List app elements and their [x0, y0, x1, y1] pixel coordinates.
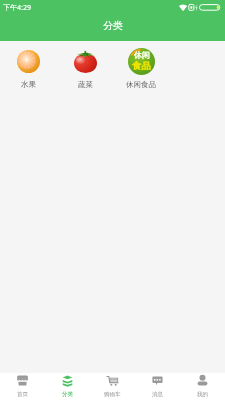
button[interactable]: 消息	[135, 373, 180, 400]
staticText: 食品	[132, 60, 151, 72]
staticText: 首页	[17, 391, 28, 398]
staticText: 分类	[103, 19, 123, 32]
staticText: 蔬菜	[78, 80, 93, 89]
button[interactable]: 首页	[0, 373, 45, 400]
staticText: 休闲	[134, 50, 150, 60]
staticText: 休闲食品	[126, 80, 156, 89]
staticText: 水果	[21, 80, 36, 89]
button[interactable]: 分类	[45, 373, 90, 400]
button[interactable]: 蔬菜	[57, 41, 113, 96]
button[interactable]: 购物车	[90, 373, 135, 400]
staticText: 下午4:29	[3, 3, 31, 13]
button[interactable]: 水果	[0, 41, 57, 96]
staticText: 分类	[62, 391, 73, 398]
button[interactable]: 休闲	[113, 41, 169, 96]
staticText: 购物车	[104, 391, 121, 398]
button[interactable]: 我的	[180, 373, 225, 400]
staticText: 消息	[152, 391, 163, 398]
staticText: 我的	[197, 391, 208, 398]
